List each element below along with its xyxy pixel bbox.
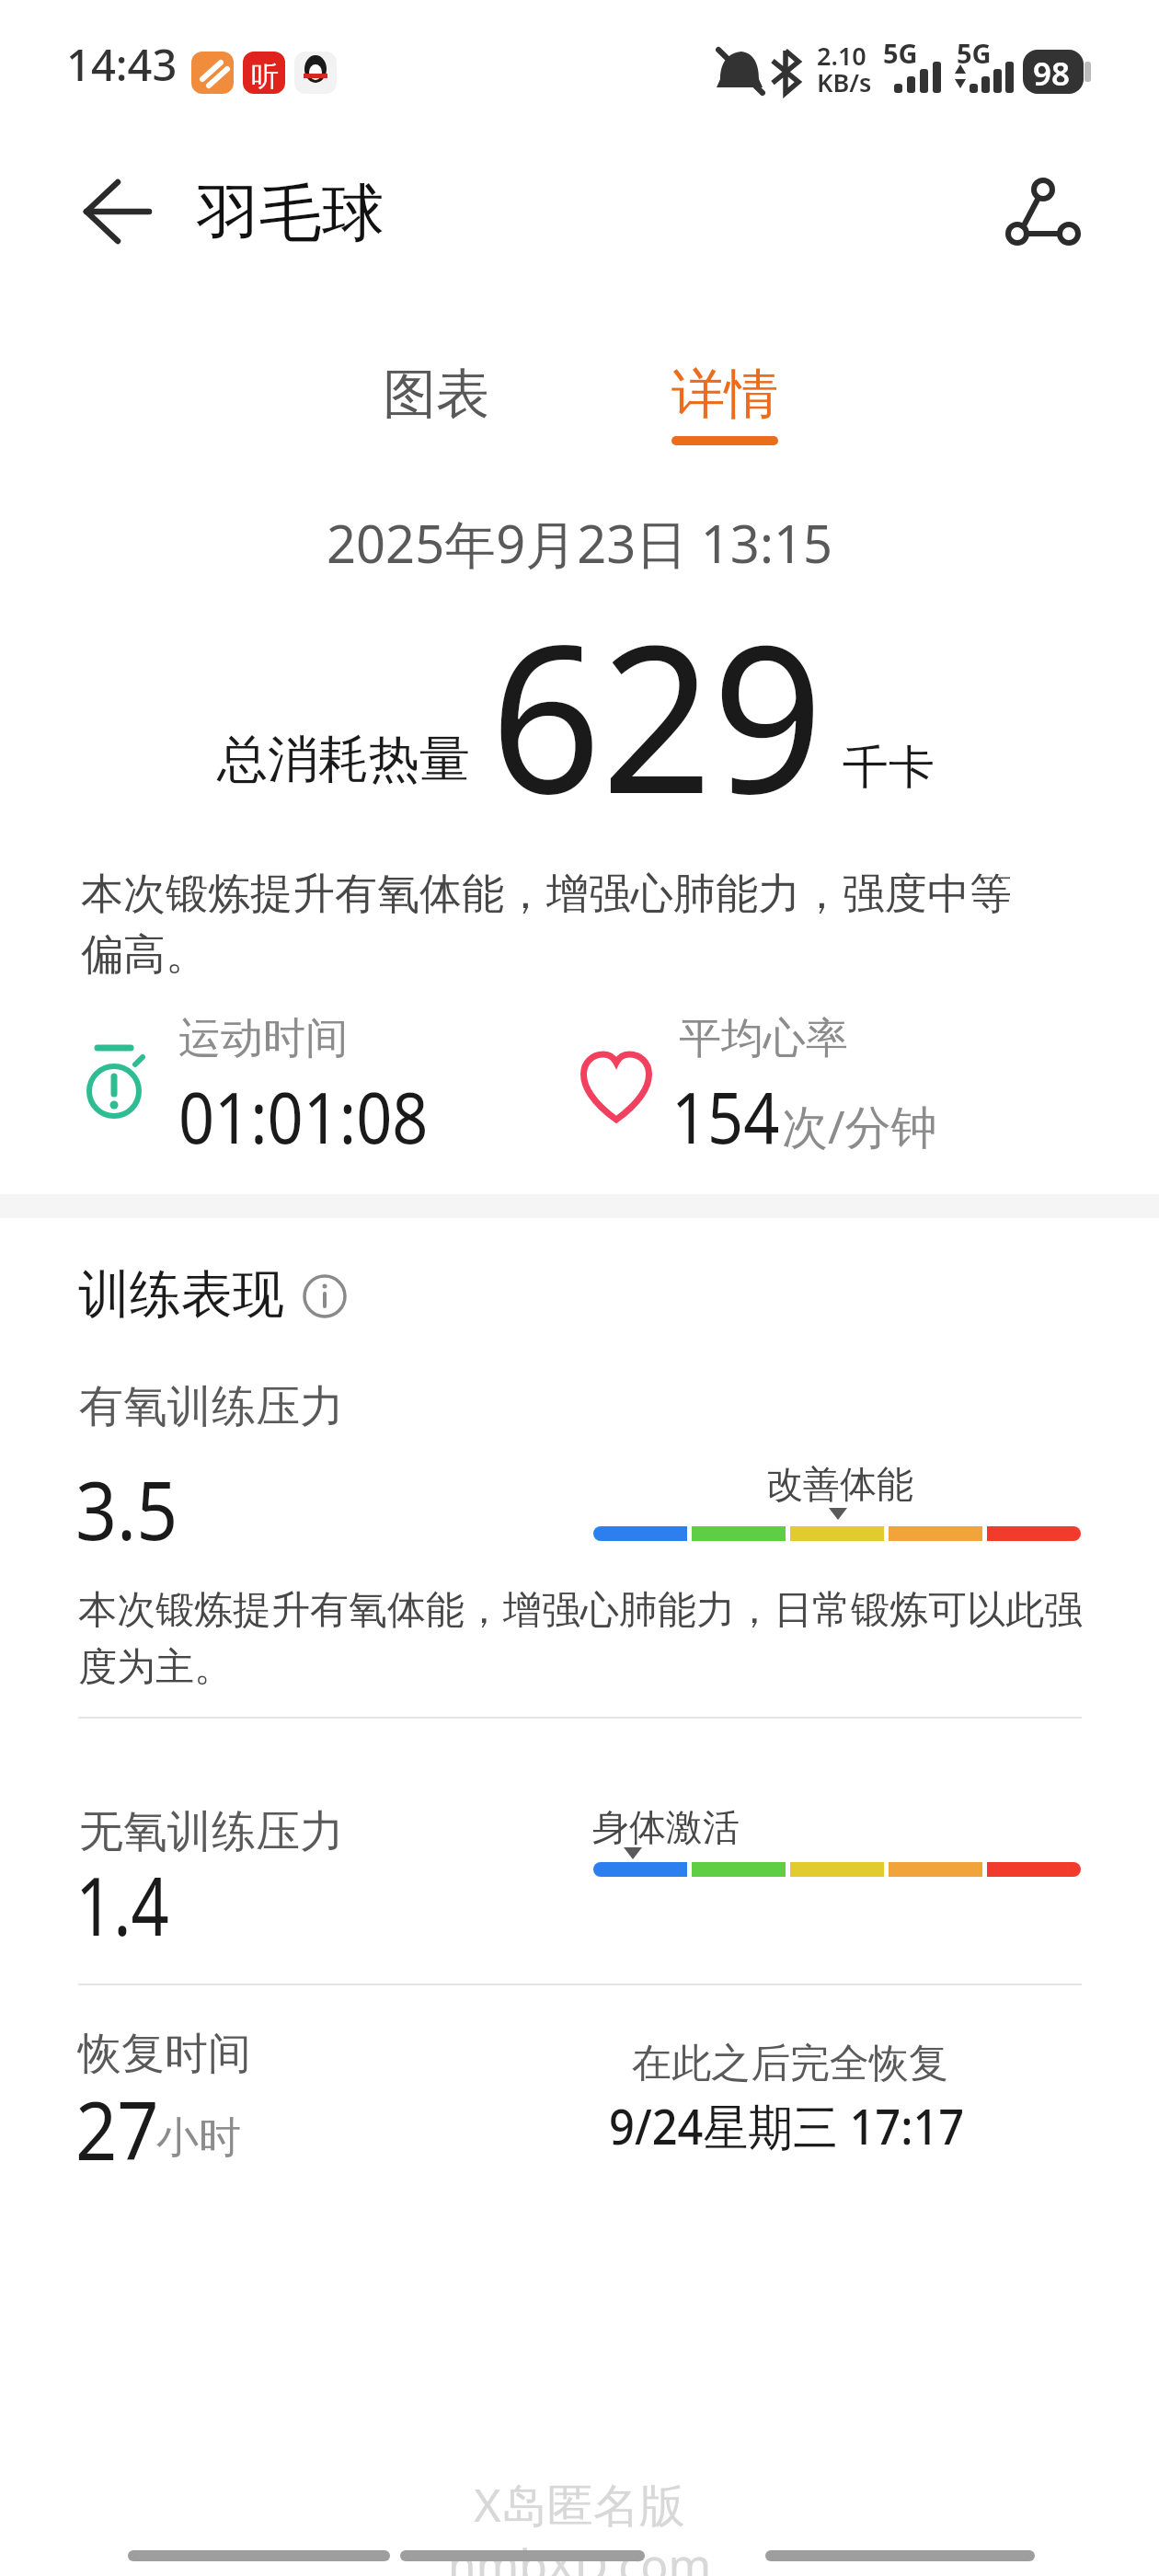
- staticText: 2025年9月23日 13:15: [0, 508, 1159, 578]
- staticText: 5G: [957, 35, 992, 71]
- staticText: nmbXD.com: [396, 2534, 763, 2576]
- button[interactable]: 图表: [370, 361, 502, 445]
- staticText: 在此之后完全恢复: [632, 2039, 948, 2088]
- button[interactable]: 详情: [659, 361, 791, 445]
- staticText: 9/24星期三 17:17: [609, 2092, 964, 2158]
- staticText: 次/分钟: [782, 1095, 937, 1157]
- staticText: 1.4: [75, 1849, 170, 1960]
- staticText: 98: [1033, 52, 1071, 96]
- staticText: 27: [75, 2074, 159, 2184]
- button[interactable]: [300, 1271, 350, 1321]
- staticText: 2.10: [817, 39, 866, 73]
- staticText: 本次锻炼提升有氧体能，增强心肺能力，日常锻炼可以此强 度为主。: [78, 1586, 1154, 1691]
- staticText: 训练表现: [78, 1262, 284, 1328]
- staticText: 改善体能: [766, 1461, 913, 1507]
- staticText: 千卡: [843, 739, 935, 797]
- button[interactable]: [61, 175, 162, 258]
- staticText: 629: [490, 575, 823, 853]
- staticText: KB/s: [817, 65, 872, 99]
- staticText: 运动时间: [178, 1012, 348, 1065]
- staticText: 无氧训练压力: [79, 1804, 344, 1859]
- staticText: 5G: [883, 35, 918, 71]
- staticText: 小时: [156, 2111, 241, 2165]
- button[interactable]: [993, 166, 1095, 258]
- staticText: 本次锻炼提升有氧体能，增强心肺能力，强度中等 偏高。: [81, 868, 1139, 981]
- staticText: 平均心率: [679, 1012, 848, 1065]
- staticText: 154: [671, 1069, 780, 1165]
- staticText: 身体激活: [592, 1804, 740, 1850]
- staticText: 详情: [671, 361, 778, 428]
- staticText: 有氧训练压力: [79, 1379, 344, 1434]
- staticText: 14:43: [66, 35, 178, 94]
- staticText: X岛匿名版: [396, 2473, 763, 2536]
- staticText: 羽毛球: [197, 175, 384, 254]
- staticText: 3.5: [75, 1454, 178, 1564]
- staticText: 恢复时间: [78, 2027, 251, 2081]
- staticText: 图表: [383, 361, 489, 428]
- staticText: 01:01:08: [178, 1069, 428, 1165]
- staticText: 听: [251, 59, 279, 94]
- staticText: 总消耗热量: [217, 728, 470, 791]
